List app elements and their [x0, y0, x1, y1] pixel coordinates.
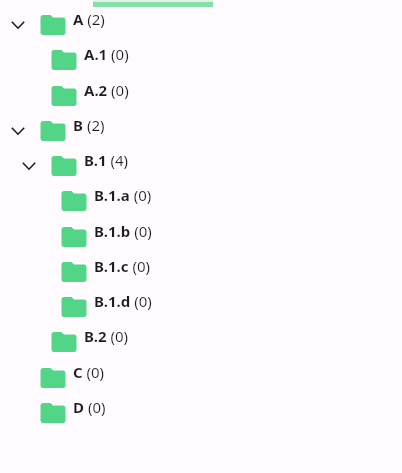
- button[interactable]: B.2 (0): [0, 324, 402, 360]
- staticText: A.2 (0): [84, 80, 129, 100]
- button[interactable]: Collapse B: [0, 113, 402, 148]
- button[interactable]: Collapse B.1: [0, 148, 402, 183]
- staticText: B.1.b (0): [94, 221, 152, 241]
- staticText: D (0): [73, 397, 106, 417]
- button[interactable]: Collapse A: [0, 7, 402, 42]
- button[interactable]: B.1.c (0): [0, 254, 402, 289]
- staticText: B.2 (0): [84, 326, 129, 346]
- staticText: B (2): [73, 115, 105, 135]
- button[interactable]: A.2 (0): [0, 78, 402, 113]
- staticText: A (2): [73, 9, 105, 29]
- button[interactable]: C (0): [0, 360, 402, 395]
- button[interactable]: Collapse A: [0, 10, 37, 40]
- button[interactable]: Collapse B.1: [11, 151, 48, 181]
- button[interactable]: B.1.d (0): [0, 289, 402, 324]
- button[interactable]: A.1 (0): [0, 42, 402, 78]
- button[interactable]: B.1.b (0): [0, 219, 402, 254]
- staticText: B.1.a (0): [94, 185, 152, 205]
- staticText: B.1 (4): [84, 150, 129, 170]
- staticText: C (0): [73, 362, 105, 382]
- staticText: B.1.d (0): [94, 291, 152, 311]
- button[interactable]: Collapse B: [0, 116, 37, 146]
- button[interactable]: B.1.a (0): [0, 183, 402, 219]
- staticText: B.1.c (0): [94, 256, 151, 276]
- button[interactable]: D (0): [0, 395, 402, 430]
- staticText: A.1 (0): [84, 44, 129, 64]
